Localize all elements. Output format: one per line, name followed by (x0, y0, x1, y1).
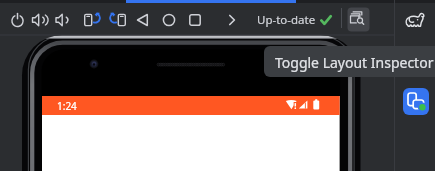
button[interactable]: Gradle (401, 9, 424, 32)
button[interactable]: Home (158, 9, 180, 31)
button[interactable]: Rotate Left (81, 9, 103, 31)
button[interactable]: Toggle Layout Inspector (347, 7, 370, 32)
staticText: 1:24 (57, 99, 77, 113)
button[interactable]: Overview (184, 9, 206, 31)
staticText: Up-to-date (257, 12, 316, 28)
button[interactable]: Volume Up (27, 9, 49, 31)
button[interactable]: More (221, 9, 243, 31)
button[interactable]: Power (6, 9, 28, 31)
button[interactable]: Running Devices (403, 88, 429, 115)
staticText: Toggle Layout Inspector (275, 53, 434, 72)
button[interactable]: Rotate Right (107, 9, 129, 31)
button[interactable]: Volume Down (51, 9, 73, 31)
button[interactable]: Back (132, 9, 154, 31)
